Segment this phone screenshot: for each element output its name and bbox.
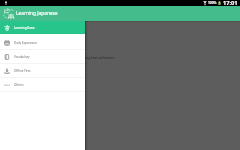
staticText: Daily Expression — [14, 41, 38, 45]
staticText: 100% — [208, 1, 217, 5]
staticText: Learning Japanese — [16, 10, 58, 17]
staticText: Vocabulary — [14, 55, 30, 59]
staticText: 17:01 — [223, 0, 238, 5]
button[interactable]: Offline Files — [0, 64, 85, 78]
staticText: Others — [14, 83, 24, 87]
button[interactable]: Learning Kana — [0, 21, 85, 34]
button[interactable]: Open navigation drawer — [2, 7, 15, 20]
button[interactable]: Daily Expression — [0, 36, 85, 50]
staticText: Learning Kana — [14, 26, 35, 30]
button[interactable]: Others — [0, 78, 85, 92]
staticText: Failed to load wrong test collection — [56, 55, 115, 60]
staticText: Offline Files — [14, 69, 31, 73]
button[interactable]: Vocabulary — [0, 50, 85, 64]
